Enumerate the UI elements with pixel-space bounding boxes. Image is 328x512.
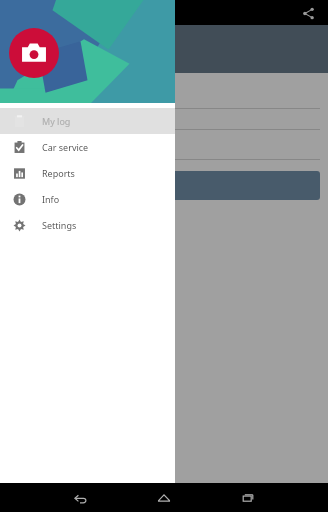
button[interactable]: Reports [0, 160, 175, 186]
button[interactable]: Recents [228, 483, 268, 512]
button[interactable]: Home [144, 483, 184, 512]
button[interactable]: Take photo [9, 28, 59, 78]
button[interactable]: Share [296, 1, 320, 25]
staticText: Reports [42, 167, 75, 179]
button[interactable]: My log [0, 108, 175, 134]
staticText: My log [42, 115, 71, 127]
button[interactable]: Settings [0, 212, 175, 238]
button[interactable]: Home [144, 483, 184, 512]
button[interactable]: Share [296, 1, 320, 25]
staticText: Car service [42, 141, 89, 153]
button[interactable]: Back [60, 483, 100, 512]
staticText: Settings [42, 219, 77, 231]
staticText: Info [42, 193, 60, 205]
button[interactable] [8, 171, 320, 200]
button[interactable]: Car service [0, 134, 175, 160]
button[interactable]: Recents [228, 483, 268, 512]
button[interactable]: Info [0, 186, 175, 212]
button[interactable]: Take photo [0, 0, 175, 103]
button[interactable]: Back [60, 483, 100, 512]
